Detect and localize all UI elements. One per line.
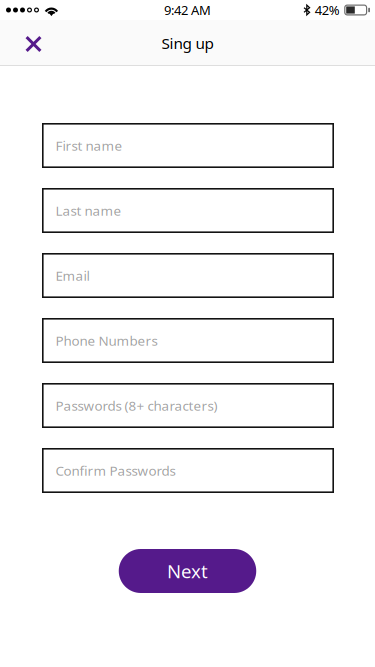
button[interactable]: Confirm Passwords	[42, 448, 334, 493]
staticText: Confirm Passwords	[55, 461, 175, 480]
button[interactable]: Phone Numbers	[42, 318, 334, 363]
button[interactable]: Passwords (8+ characters)	[42, 383, 334, 428]
button[interactable]: First name	[42, 123, 334, 168]
staticText: Phone Numbers	[55, 331, 157, 350]
staticText: Email	[55, 266, 89, 285]
staticText: Passwords (8+ characters)	[55, 396, 217, 415]
button[interactable]: Next	[119, 549, 256, 593]
staticText: 42%	[315, 1, 340, 19]
staticText: 9:42 AM	[164, 1, 211, 19]
staticText: Last name	[55, 201, 121, 220]
staticText: First name	[55, 136, 122, 155]
staticText: Sing up	[161, 33, 213, 53]
button[interactable]: Last name	[42, 188, 334, 233]
staticText: Next	[167, 558, 208, 584]
button[interactable]: Close	[12, 19, 56, 66]
button[interactable]: Email	[42, 253, 334, 298]
